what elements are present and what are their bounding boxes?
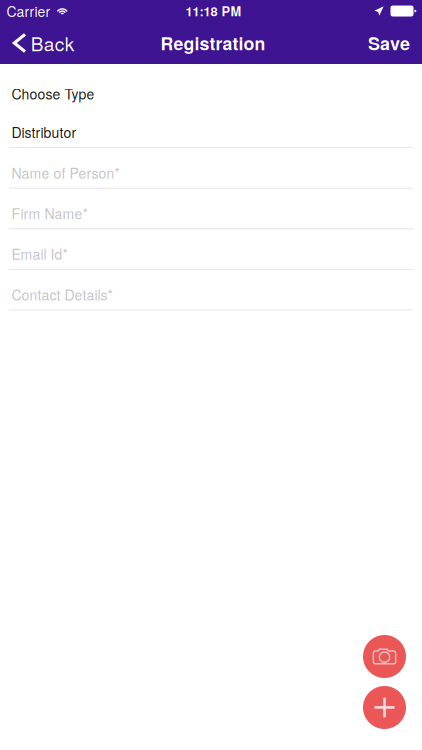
staticText: Choose Type <box>11 83 94 103</box>
staticText: Save <box>368 30 410 56</box>
staticText: Back <box>31 29 75 57</box>
staticText: Firm Name* <box>11 203 87 223</box>
staticText: Email Id* <box>11 244 67 264</box>
button[interactable]: Add <box>363 686 406 729</box>
staticText: Name of Person* <box>11 163 119 183</box>
staticText: Contact Details* <box>11 284 112 304</box>
button[interactable]: Save <box>358 22 422 64</box>
staticText: Carrier <box>7 1 51 21</box>
staticText: Distributor <box>11 122 76 142</box>
staticText: Registration <box>160 30 265 56</box>
button[interactable]: Take photo <box>363 635 406 678</box>
button[interactable]: Back <box>0 22 83 64</box>
staticText: 11:18 PM <box>185 2 241 20</box>
